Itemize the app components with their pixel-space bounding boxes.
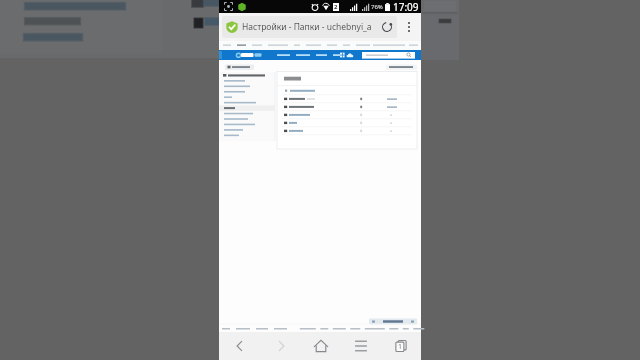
- staticText: 17:09: [393, 0, 419, 13]
- staticText: 76%: [371, 3, 383, 11]
- button[interactable]: Menu: [341, 332, 381, 360]
- staticText: Настройки - Папки - uchebnyi_a: [242, 21, 378, 33]
- button[interactable]: Forward: [260, 332, 301, 360]
- button[interactable]: Reload page: [379, 19, 395, 35]
- button[interactable]: More options: [397, 13, 421, 41]
- button[interactable]: Home: [301, 332, 341, 360]
- staticText: 2: [334, 3, 338, 11]
- button[interactable]: Настройки - Папки - uchebnyi_a: [222, 16, 397, 38]
- button[interactable]: Tabs: [381, 332, 421, 360]
- button[interactable]: Back: [219, 332, 260, 360]
- staticText: 1: [398, 342, 403, 352]
